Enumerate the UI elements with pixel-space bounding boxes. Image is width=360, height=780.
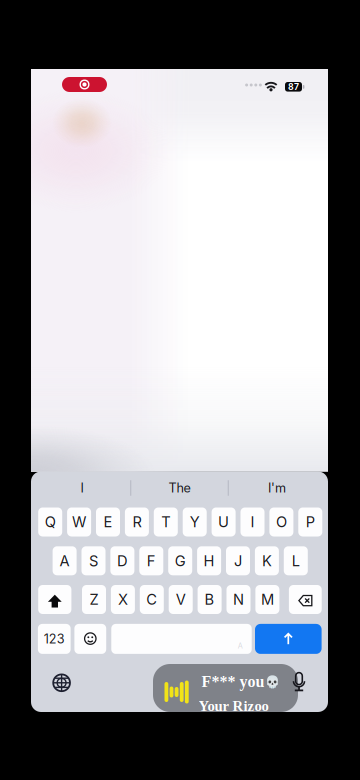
staticText: N	[233, 591, 244, 608]
staticText: F	[147, 552, 156, 570]
button[interactable]: J	[226, 546, 250, 575]
staticText: 123	[44, 631, 65, 646]
button[interactable]: X	[111, 585, 135, 614]
staticText: B	[205, 591, 215, 608]
button[interactable]: N	[226, 585, 250, 614]
staticText: S	[89, 552, 98, 570]
button[interactable]: F*** you	[153, 664, 298, 712]
staticText: I	[80, 480, 83, 496]
staticText: C	[146, 591, 157, 608]
staticText: I	[250, 513, 254, 531]
staticText: Y	[190, 513, 200, 531]
button[interactable]: E	[96, 507, 120, 536]
button[interactable]: Send	[255, 624, 322, 654]
button[interactable]: Next keyboard	[52, 673, 71, 692]
staticText: T	[161, 513, 170, 531]
button[interactable]: 123	[38, 624, 71, 654]
staticText: 87	[288, 82, 299, 92]
button[interactable]: R	[125, 507, 149, 536]
staticText: A	[238, 641, 243, 650]
button[interactable]: V	[169, 585, 193, 614]
staticText: O	[276, 513, 287, 531]
button[interactable]: space	[111, 624, 252, 654]
button[interactable]: The	[131, 473, 228, 502]
staticText: V	[176, 591, 186, 608]
button[interactable]: A	[53, 546, 77, 575]
staticText: P	[306, 513, 315, 531]
staticText: X	[118, 591, 128, 608]
button[interactable]: C	[140, 585, 164, 614]
button[interactable]: Stop screen recording	[62, 77, 107, 92]
button[interactable]: Y	[183, 507, 207, 536]
staticText: A	[60, 552, 70, 570]
staticText: Z	[89, 591, 98, 608]
staticText: 💀	[265, 674, 280, 689]
staticText: Your Rizoo	[198, 698, 268, 714]
button[interactable]: Emoji	[74, 624, 106, 654]
button[interactable]: O	[269, 507, 293, 536]
staticText: F*** you	[201, 673, 264, 690]
button[interactable]: M	[255, 585, 279, 614]
button[interactable]: I'm	[229, 473, 325, 502]
staticText: U	[218, 513, 229, 531]
button[interactable]: T	[154, 507, 178, 536]
button[interactable]: G	[168, 546, 192, 575]
button[interactable]: S	[81, 546, 105, 575]
staticText: H	[204, 552, 215, 570]
button[interactable]: Dictate	[292, 672, 305, 692]
button[interactable]: F	[139, 546, 163, 575]
staticText: W	[72, 513, 86, 531]
staticText: The	[168, 480, 190, 496]
staticText: K	[262, 552, 272, 570]
button[interactable]: D	[110, 546, 134, 575]
button[interactable]: B	[198, 585, 222, 614]
staticText: E	[103, 513, 112, 531]
button[interactable]: P	[298, 507, 322, 536]
button[interactable]: I	[34, 473, 130, 502]
button[interactable]: Shift	[38, 585, 71, 614]
staticText: M	[261, 591, 274, 608]
staticText: G	[175, 552, 186, 570]
staticText: J	[234, 552, 242, 570]
button[interactable]: Q	[38, 507, 62, 536]
staticText: Q	[45, 513, 56, 531]
button[interactable]: Z	[82, 585, 106, 614]
button[interactable]: L	[284, 546, 308, 575]
button[interactable]: H	[197, 546, 221, 575]
staticText: R	[132, 513, 141, 531]
staticText: D	[117, 552, 128, 570]
staticText: L	[292, 552, 300, 570]
button[interactable]: K	[255, 546, 279, 575]
button[interactable]: Delete	[289, 585, 322, 614]
staticText: I'm	[268, 480, 286, 496]
button[interactable]: I	[240, 507, 264, 536]
button[interactable]: W	[67, 507, 91, 536]
button[interactable]: U	[212, 507, 236, 536]
